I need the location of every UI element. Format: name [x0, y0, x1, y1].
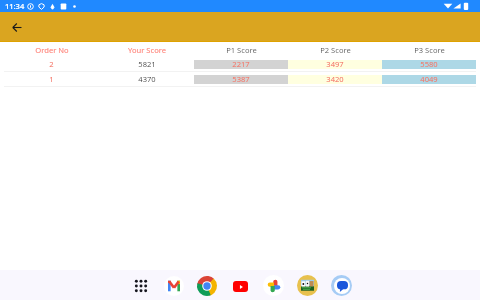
button[interactable]: YouTube	[230, 276, 250, 296]
button[interactable]: Chrome	[197, 276, 217, 296]
button[interactable]: Gmail	[164, 276, 184, 296]
staticText: 3497	[326, 59, 344, 69]
staticText: Your Score	[128, 45, 166, 55]
button[interactable]: Solitaire	[297, 275, 318, 296]
staticText: Order No	[35, 45, 69, 55]
staticText: 5580	[420, 59, 438, 69]
staticText: 4370	[138, 74, 156, 84]
staticText: 4049	[420, 74, 438, 84]
staticText: P1 Score	[226, 45, 257, 55]
staticText: P2 Score	[320, 45, 351, 55]
staticText: 3420	[326, 74, 344, 84]
staticText: P3 Score	[414, 45, 445, 55]
staticText: 2217	[232, 59, 250, 69]
button[interactable]: Messages	[331, 275, 352, 296]
staticText: 2	[49, 59, 54, 69]
button[interactable]: Photos	[263, 275, 284, 296]
button[interactable]: All apps	[131, 276, 151, 296]
button[interactable]: Back	[7, 17, 27, 37]
staticText: 5821	[138, 59, 156, 69]
staticText: 1	[49, 74, 54, 84]
staticText: 11:34	[5, 1, 25, 11]
staticText: 5387	[232, 74, 250, 84]
